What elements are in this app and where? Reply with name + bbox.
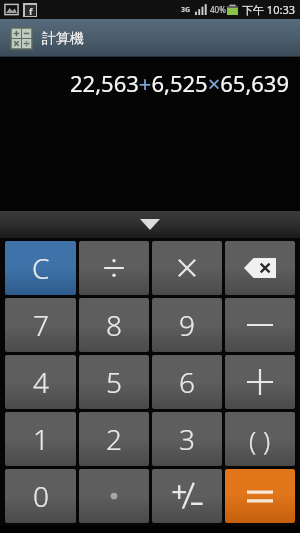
staticText: 22,563+6,525×65,639 xyxy=(70,68,290,98)
button[interactable]: 9 xyxy=(152,298,222,352)
staticText: 3 xyxy=(179,420,195,458)
button[interactable]: ( ) xyxy=(225,412,295,466)
button[interactable]: Equals xyxy=(225,469,295,523)
staticText: 3G xyxy=(181,5,191,15)
button[interactable] xyxy=(225,355,295,409)
button[interactable] xyxy=(225,298,295,352)
button[interactable] xyxy=(79,469,149,523)
button[interactable] xyxy=(79,241,149,295)
button[interactable]: 0 xyxy=(5,469,76,523)
button[interactable] xyxy=(152,241,222,295)
button[interactable] xyxy=(152,469,222,523)
button[interactable]: 6 xyxy=(152,355,222,409)
staticText: 6 xyxy=(179,363,195,401)
staticText: 4 xyxy=(33,363,49,401)
button[interactable]: 1 xyxy=(5,412,76,466)
staticText: 1 xyxy=(33,420,49,458)
staticText: 0 xyxy=(33,477,49,515)
staticText: 9 xyxy=(179,306,195,344)
staticText: 2 xyxy=(106,420,122,458)
staticText: 7 xyxy=(33,306,49,344)
staticText: 40% xyxy=(210,4,226,15)
button[interactable]: 3 xyxy=(152,412,222,466)
button[interactable]: 5 xyxy=(79,355,149,409)
staticText: f xyxy=(29,5,33,16)
staticText: C xyxy=(32,249,50,287)
button[interactable]: C xyxy=(5,241,76,295)
staticText: 8 xyxy=(106,306,122,344)
button[interactable]: 4 xyxy=(5,355,76,409)
button[interactable] xyxy=(0,211,300,238)
staticText: 5 xyxy=(106,363,122,401)
staticText: 下午 10:33 xyxy=(242,2,295,17)
staticText: ( ) xyxy=(249,422,271,457)
button[interactable]: 2 xyxy=(79,412,149,466)
button[interactable]: 7 xyxy=(5,298,76,352)
button[interactable]: Backspace xyxy=(225,241,295,295)
button[interactable]: 8 xyxy=(79,298,149,352)
staticText: 計算機 xyxy=(42,30,84,48)
